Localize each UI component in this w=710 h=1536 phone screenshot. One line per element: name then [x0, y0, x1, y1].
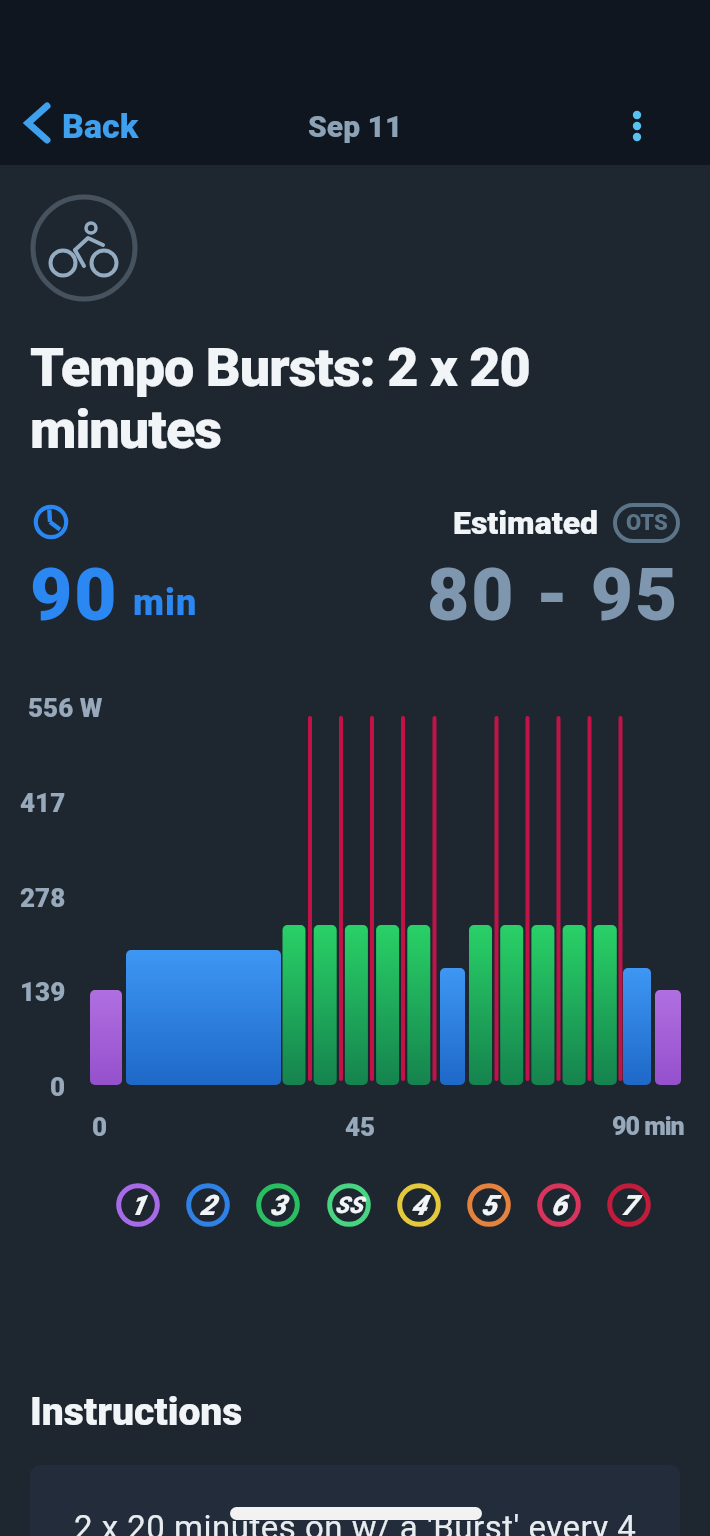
staticText: 45: [345, 1112, 376, 1142]
staticText: Sep 11: [308, 109, 403, 144]
staticText: 278: [20, 883, 66, 913]
staticText: 2 x 20 minutes on w/ a 'Burst' every 4: [74, 1508, 637, 1536]
staticText: 3: [270, 1189, 286, 1222]
staticText: 90 min: [612, 1112, 684, 1141]
button[interactable]: Back: [16, 96, 156, 156]
button[interactable]: 4: [397, 1183, 441, 1227]
button[interactable]: 2 x 20 minutes on w/ a 'Burst' every 4: [30, 1465, 680, 1536]
button[interactable]: 3: [256, 1183, 300, 1227]
button[interactable]: OTS: [613, 503, 680, 543]
staticText: 7: [621, 1189, 637, 1222]
staticText: Tempo Bursts: 2 x 20 minutes: [30, 336, 530, 461]
button[interactable]: SS: [327, 1183, 371, 1227]
staticText: 556 W: [28, 693, 103, 723]
staticText: OTS: [626, 510, 668, 536]
staticText: Estimated: [453, 504, 599, 542]
staticText: 139: [20, 977, 66, 1007]
staticText: 90: [30, 552, 119, 638]
staticText: 0: [50, 1072, 66, 1102]
button[interactable]: [607, 96, 667, 156]
button[interactable]: 1: [116, 1183, 160, 1227]
staticText: 4: [411, 1189, 427, 1222]
staticText: Instructions: [30, 1389, 243, 1435]
staticText: 5: [481, 1189, 497, 1222]
staticText: 1: [130, 1189, 146, 1222]
staticText: Back: [62, 106, 139, 146]
staticText: 2: [200, 1189, 216, 1222]
button[interactable]: 2: [186, 1183, 230, 1227]
button[interactable]: 6: [537, 1183, 581, 1227]
staticText: 0: [92, 1112, 108, 1142]
button[interactable]: 7: [607, 1183, 651, 1227]
staticText: 6: [551, 1189, 567, 1222]
staticText: SS: [335, 1192, 363, 1219]
staticText: min: [133, 582, 198, 624]
button[interactable]: 5: [467, 1183, 511, 1227]
staticText: 80 - 95: [427, 552, 680, 638]
staticText: 417: [20, 788, 66, 818]
